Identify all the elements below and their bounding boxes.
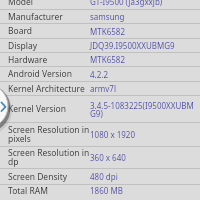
staticText: 4.2.2: [90, 69, 109, 80]
staticText: Screen Density: [8, 171, 68, 183]
button[interactable]: Total RAM: [0, 185, 200, 194]
staticText: Total RAM: [8, 185, 48, 194]
button[interactable]: Model: [0, 0, 200, 9]
staticText: MTK6582: [90, 26, 125, 37]
button[interactable]: Android Version: [0, 67, 200, 81]
staticText: Kernel Version: [8, 103, 66, 115]
button[interactable]: Screen Density: [0, 169, 200, 184]
staticText: Hardware: [8, 54, 48, 66]
staticText: 360 x 640: [90, 152, 126, 163]
staticText: MTK6582: [90, 54, 125, 65]
button[interactable]: Display: [0, 39, 200, 52]
button[interactable]: Hardware: [0, 53, 200, 66]
staticText: Screen Resolution in pixels: [8, 124, 90, 145]
button[interactable]: Screen Resolution in pixels: [0, 123, 200, 146]
staticText: Board: [8, 25, 33, 37]
button[interactable]: Board: [0, 24, 200, 38]
staticText: Model: [8, 0, 34, 8]
staticText: Kernel Architecture: [8, 83, 85, 95]
button[interactable]: Kernel Version: [0, 96, 200, 122]
staticText: GT-I9500 (ja3gxxjb): [90, 0, 163, 7]
staticText: 1080 x 1920: [90, 129, 135, 140]
staticText: Android Version: [8, 68, 72, 80]
staticText: Display: [8, 40, 37, 52]
staticText: samsung: [90, 11, 125, 22]
staticText: Manufacturer: [8, 11, 63, 23]
staticText: 3.4.5-1083225(I9500XXUBM G9): [90, 100, 194, 119]
button[interactable]: Kernel Architecture: [0, 82, 200, 95]
staticText: armv7l: [90, 83, 116, 94]
button[interactable]: Screen Resolution in dp: [0, 147, 200, 168]
staticText: Screen Resolution in dp: [8, 147, 90, 168]
staticText: 480 dpi: [90, 171, 118, 182]
staticText: JDQ39.I9500XXUBMG9: [90, 40, 175, 51]
staticText: 1860 MB: [90, 185, 123, 194]
button[interactable]: Manufacturer: [0, 10, 200, 23]
